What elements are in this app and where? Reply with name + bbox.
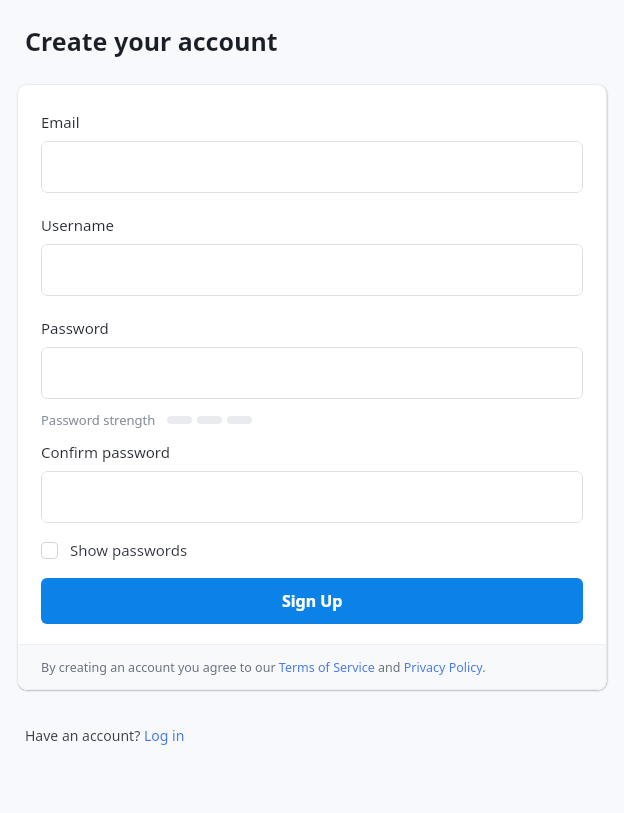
button[interactable]: By creating an account you agree to our …: [41, 659, 486, 676]
button[interactable]: Show passwords: [41, 540, 188, 560]
staticText: Password strength: [41, 411, 156, 429]
button[interactable]: Log in: [144, 726, 185, 745]
staticText: Username: [41, 215, 114, 235]
button[interactable]: [41, 347, 583, 399]
button[interactable]: [41, 141, 583, 193]
staticText: Password: [41, 318, 109, 338]
staticText: Have an account?: [25, 726, 144, 745]
staticText: Sign Up: [282, 590, 343, 612]
staticText: Show passwords: [70, 540, 188, 560]
staticText: Email: [41, 112, 80, 132]
button[interactable]: [41, 244, 583, 296]
button[interactable]: Sign Up: [41, 578, 583, 624]
button[interactable]: [41, 471, 583, 523]
staticText: Create your account: [25, 24, 278, 58]
staticText: Confirm password: [41, 442, 170, 462]
